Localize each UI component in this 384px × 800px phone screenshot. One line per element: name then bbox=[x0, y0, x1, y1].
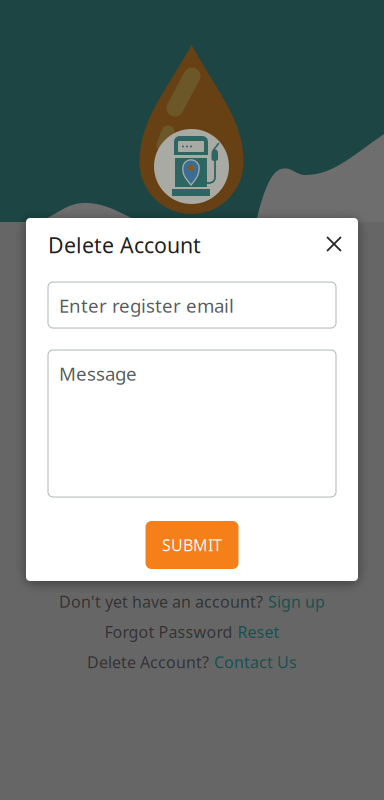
button[interactable]: Sign up bbox=[268, 591, 325, 612]
staticText: Delete Account bbox=[48, 231, 201, 259]
staticText: Don't yet have an account? bbox=[59, 591, 263, 612]
staticText: Sign up bbox=[268, 591, 325, 612]
staticText: Forgot Password bbox=[104, 621, 232, 642]
staticText: Contact Us bbox=[214, 651, 297, 673]
button[interactable]: Contact Us bbox=[214, 651, 297, 673]
staticText: Enter register email bbox=[59, 293, 234, 318]
button[interactable]: Reset bbox=[237, 621, 279, 642]
staticText: Delete Account? bbox=[87, 651, 209, 673]
staticText: Reset bbox=[237, 621, 279, 642]
button[interactable]: SUBMIT bbox=[145, 521, 238, 569]
staticText: Message bbox=[59, 361, 137, 386]
button[interactable]: Close bbox=[315, 234, 336, 255]
staticText: SUBMIT bbox=[162, 534, 222, 556]
